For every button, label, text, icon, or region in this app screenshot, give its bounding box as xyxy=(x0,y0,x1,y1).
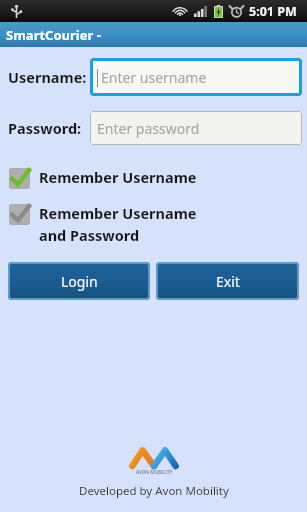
staticText: Developed by Avon Mobility xyxy=(79,483,229,499)
staticText: AVON MOBILITY xyxy=(136,469,173,475)
staticText: 5:01 PM xyxy=(249,3,297,20)
button[interactable]: Login xyxy=(8,262,150,300)
staticText: Remember Username xyxy=(39,167,197,187)
button[interactable]: Exit xyxy=(156,262,299,300)
button[interactable]: Remember Username xyxy=(9,167,299,188)
staticText: Password: xyxy=(8,118,82,138)
staticText: Enter password xyxy=(97,119,200,138)
staticText: Remember Username xyxy=(39,203,197,223)
staticText: and Password xyxy=(39,225,140,245)
staticText: SmartCourier - xyxy=(6,26,101,44)
staticText: Exit xyxy=(216,272,240,291)
button[interactable]: Remember Username xyxy=(9,203,299,245)
button[interactable]: Enter username xyxy=(90,58,302,96)
staticText: Username: xyxy=(8,67,87,87)
staticText: Enter username xyxy=(101,68,207,87)
button[interactable]: Enter password xyxy=(90,111,302,145)
staticText: Login xyxy=(61,272,98,291)
